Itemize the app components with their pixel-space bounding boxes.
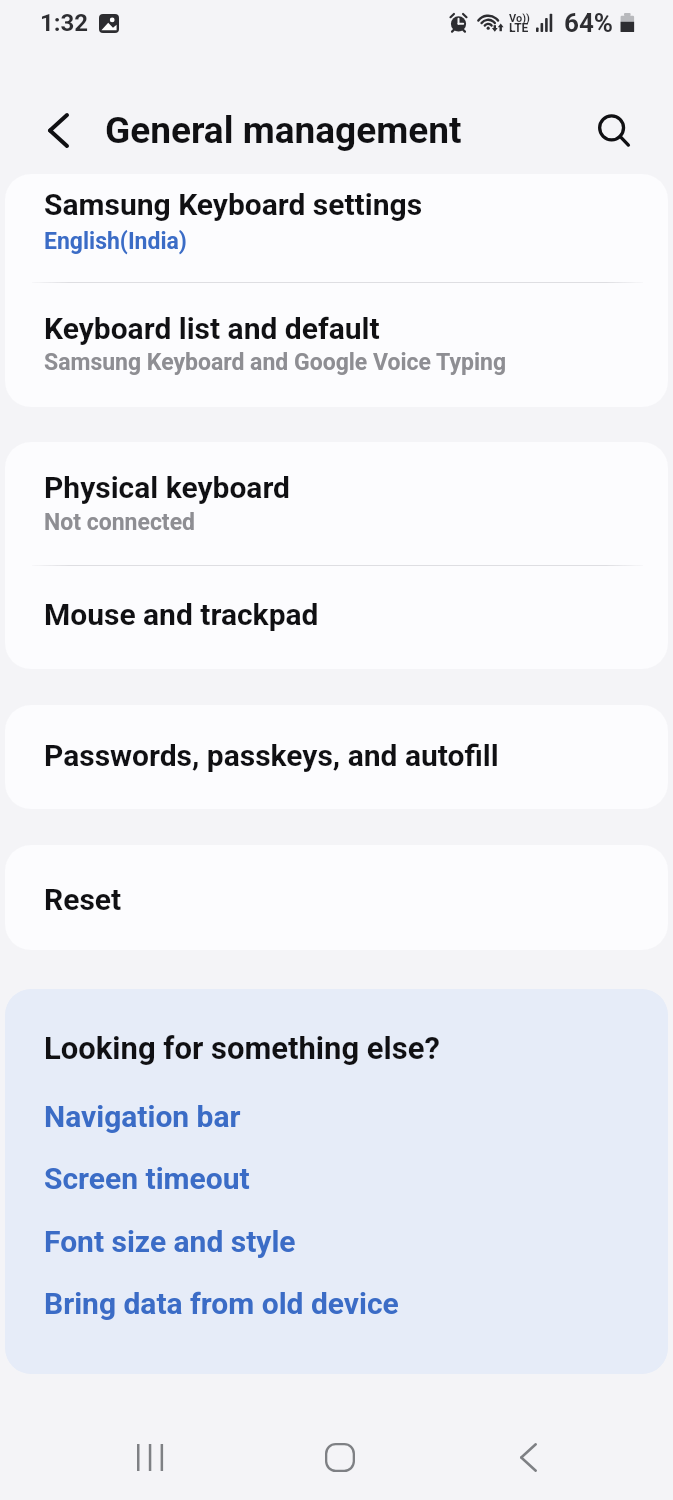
button[interactable]: Reset xyxy=(5,845,668,950)
staticText: LTE xyxy=(509,21,529,35)
staticText: Passwords, passkeys, and autofill xyxy=(44,738,499,773)
button[interactable]: Back xyxy=(478,1428,578,1486)
button[interactable]: Keyboard list and default xyxy=(5,283,668,407)
staticText: 1:32 xyxy=(40,9,89,37)
staticText: Keyboard list and default xyxy=(44,311,380,346)
button[interactable]: Home xyxy=(290,1428,390,1486)
button[interactable]: Mouse and trackpad xyxy=(5,566,668,669)
staticText: Navigation bar xyxy=(44,1099,241,1134)
staticText: Screen timeout xyxy=(44,1161,250,1196)
button[interactable]: Passwords, passkeys, and autofill xyxy=(5,705,668,809)
staticText: Font size and style xyxy=(44,1224,296,1259)
staticText: English(India) xyxy=(44,228,187,255)
staticText: Looking for something else? xyxy=(44,1030,440,1066)
button[interactable]: Navigation bar xyxy=(44,1085,644,1148)
staticText: Samsung Keyboard and Google Voice Typing xyxy=(44,349,507,376)
staticText: Bring data from old device xyxy=(44,1286,399,1321)
staticText: Mouse and trackpad xyxy=(44,597,319,632)
staticText: 64% xyxy=(564,8,614,38)
staticText: Not connected xyxy=(44,509,196,536)
staticText: Reset xyxy=(44,882,122,917)
button[interactable]: Physical keyboard xyxy=(5,442,668,565)
button[interactable]: Screen timeout xyxy=(44,1147,644,1210)
button[interactable]: Recent apps xyxy=(100,1428,200,1486)
staticText: Samsung Keyboard settings xyxy=(44,187,423,222)
button[interactable]: Search xyxy=(588,107,638,157)
staticText: Physical keyboard xyxy=(44,470,290,505)
button[interactable]: Samsung Keyboard settings xyxy=(5,174,668,282)
staticText: Vo)) xyxy=(509,12,530,25)
button[interactable]: Bring data from old device xyxy=(44,1272,644,1335)
staticText: General management xyxy=(105,109,462,152)
button[interactable]: Font size and style xyxy=(44,1210,644,1273)
button[interactable]: Navigate up xyxy=(33,105,83,155)
